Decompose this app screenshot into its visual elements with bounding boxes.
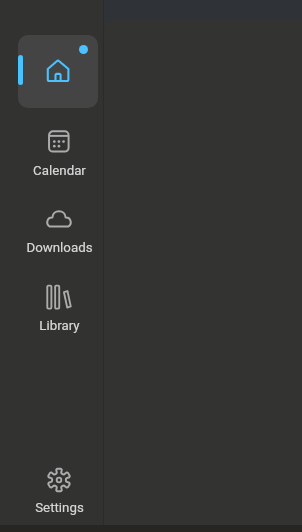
button[interactable]: Calendar [19,122,99,183]
button[interactable]: Downloads [19,198,99,260]
staticText: Calendar [33,163,86,179]
staticText: Library [39,318,80,334]
staticText: Downloads [26,240,93,256]
button[interactable]: Settings [19,460,99,520]
button[interactable]: Library [19,275,99,338]
staticText: Settings [35,500,84,516]
button[interactable]: Home [18,35,98,108]
